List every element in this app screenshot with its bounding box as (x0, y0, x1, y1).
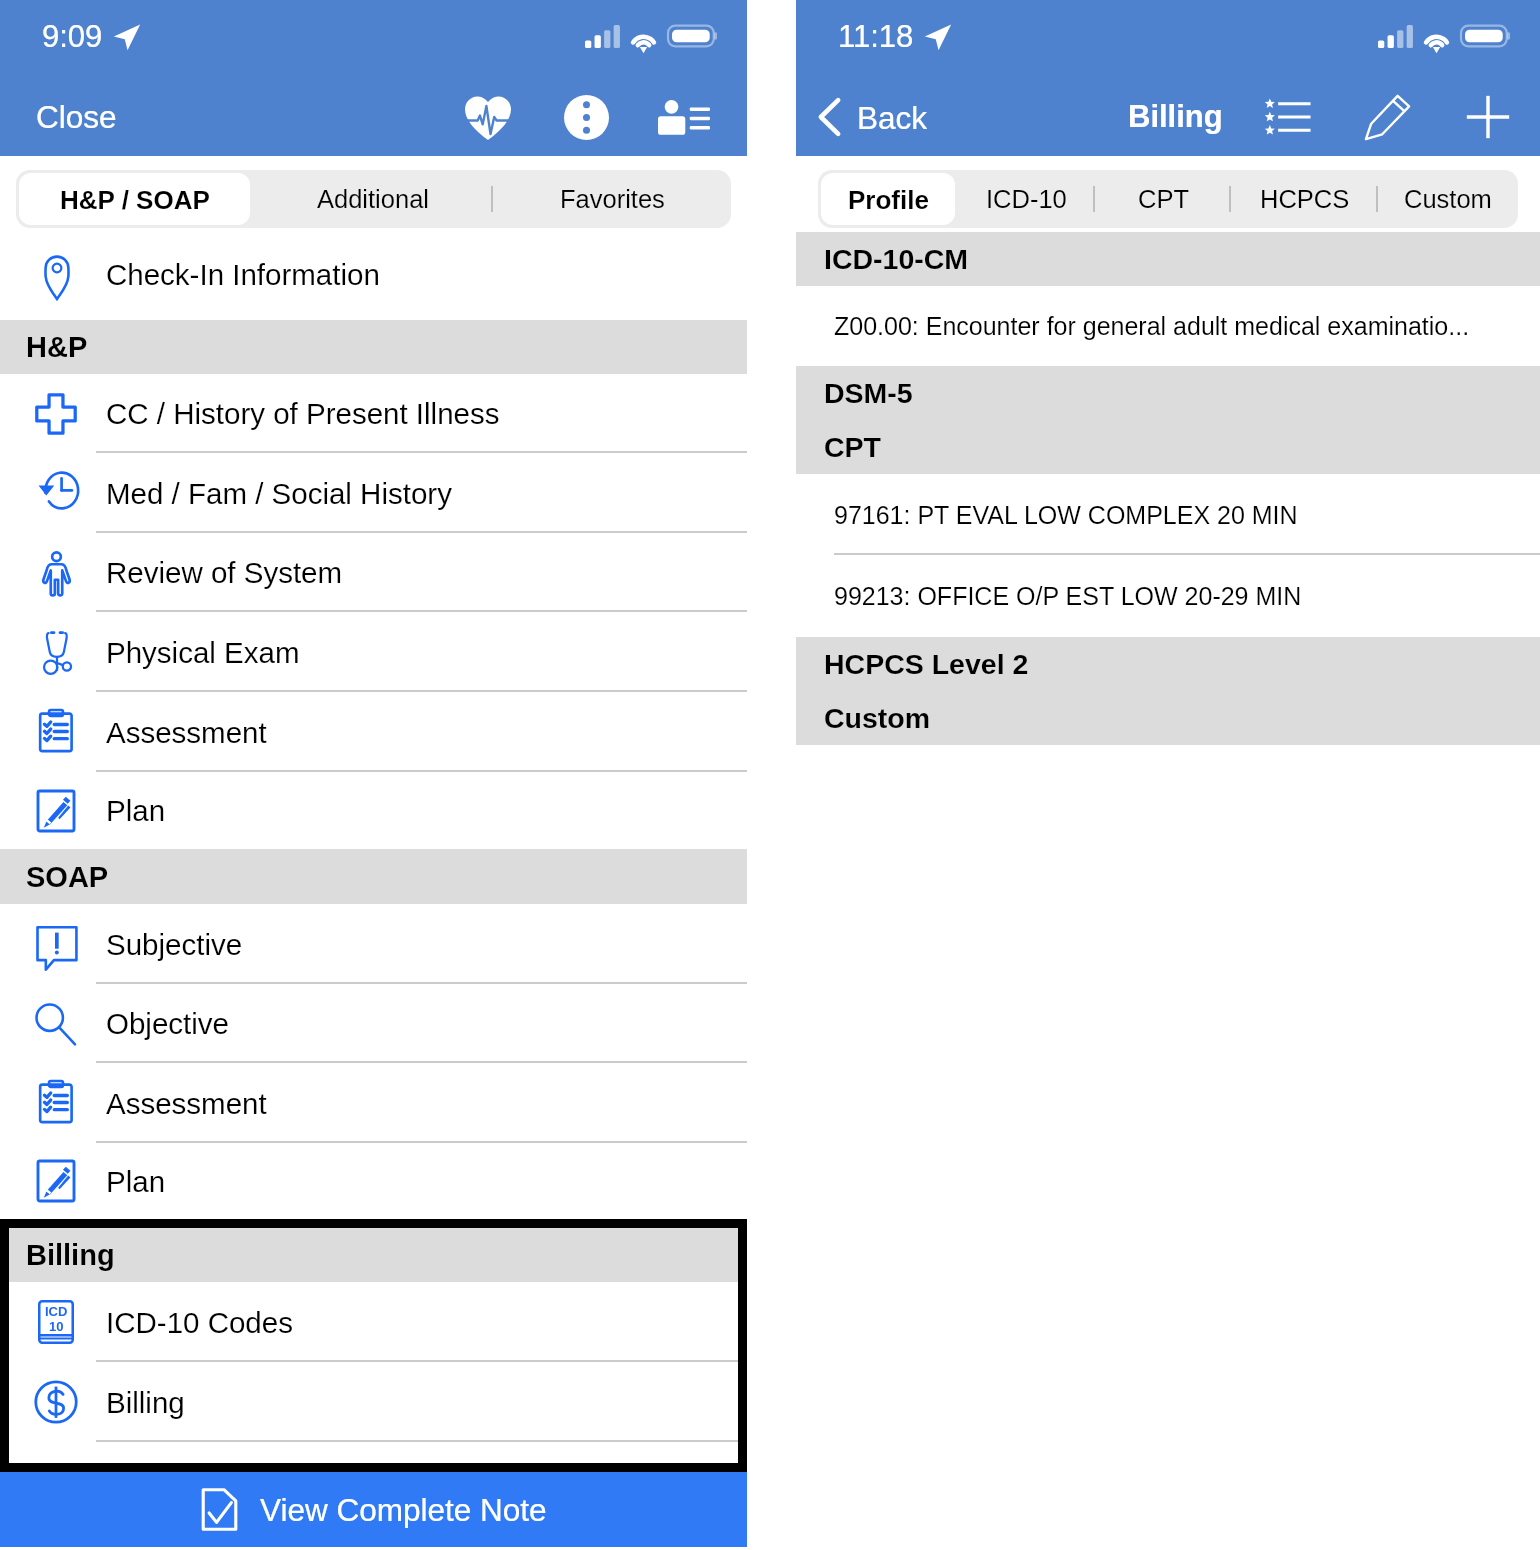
staticText: H&P (26, 331, 88, 363)
staticText: Plan (106, 794, 166, 827)
staticText: Close (36, 99, 117, 134)
staticText: Custom (824, 702, 931, 734)
staticText: CC / History of Present Illness (106, 397, 500, 430)
button[interactable]: H&P / SOAP (19, 173, 250, 225)
button[interactable]: Objective (0, 984, 747, 1063)
staticText: Physical Exam (106, 636, 300, 669)
button[interactable]: Add (1449, 78, 1527, 156)
button[interactable]: CPT (1098, 173, 1228, 225)
button[interactable]: Profile (821, 173, 955, 225)
staticText: Plan (106, 1165, 166, 1198)
button[interactable]: Edit (1349, 78, 1427, 156)
button[interactable]: Plan (0, 772, 747, 849)
staticText: Billing (106, 1386, 185, 1419)
staticText: ICD (45, 1304, 68, 1319)
staticText: HCPCS (1260, 185, 1350, 213)
staticText: Z00.00: Encounter for general adult medi… (834, 312, 1470, 340)
button[interactable]: Billing (0, 1362, 747, 1442)
staticText: Additional (317, 185, 429, 213)
staticText: Subjective (106, 928, 243, 961)
button[interactable]: More options (547, 78, 625, 156)
button[interactable]: Additional (256, 173, 490, 225)
staticText: ICD-10-CM (824, 243, 969, 275)
button[interactable]: Physical Exam (0, 612, 747, 692)
staticText: 11:18 (838, 19, 914, 54)
staticText: CPT (824, 431, 881, 463)
staticText: DSM-5 (824, 377, 913, 409)
button[interactable]: Check-In Information (0, 228, 747, 320)
staticText: Billing (1128, 99, 1223, 134)
staticText: Objective (106, 1007, 229, 1040)
staticText: HCPCS Level 2 (824, 648, 1029, 680)
staticText: Billing (26, 1239, 115, 1271)
button[interactable]: 99213: OFFICE O/P EST LOW 20-29 MIN (796, 555, 1540, 637)
button[interactable]: 97161: PT EVAL LOW COMPLEX 20 MIN (796, 474, 1540, 555)
button[interactable]: View Complete Note (0, 1472, 747, 1547)
staticText: Med / Fam / Social History (106, 477, 452, 510)
staticText: 10 (49, 1319, 64, 1334)
staticText: 99213: OFFICE O/P EST LOW 20-29 MIN (834, 582, 1302, 610)
staticText: 97161: PT EVAL LOW COMPLEX 20 MIN (834, 501, 1298, 529)
button[interactable]: Review of System (0, 533, 747, 612)
button[interactable]: Subjective (0, 904, 747, 984)
button[interactable]: Favorites (496, 173, 728, 225)
button[interactable]: Med / Fam / Social History (0, 453, 747, 533)
button[interactable]: HCPCS (1234, 173, 1375, 225)
staticText: Review of System (106, 556, 343, 589)
staticText: Custom (1404, 185, 1492, 213)
staticText: CPT (1138, 185, 1189, 213)
staticText: H&P / SOAP (60, 185, 210, 214)
button[interactable]: Patient list (645, 78, 723, 156)
staticText: Assessment (106, 716, 267, 749)
staticText: Favorites (560, 185, 665, 213)
button[interactable]: Custom (1381, 173, 1515, 225)
staticText: ICD-10 Codes (106, 1306, 293, 1339)
staticText: Assessment (106, 1087, 267, 1120)
button[interactable]: ICD-10 (961, 173, 1092, 225)
staticText: Back (857, 100, 928, 135)
button[interactable]: ICD (0, 1282, 747, 1362)
staticText: ICD-10 (986, 185, 1067, 213)
button[interactable]: Favorites list (1249, 78, 1327, 156)
button[interactable]: Plan (0, 1143, 747, 1219)
button[interactable]: Assessment (0, 692, 747, 772)
button[interactable]: CC / History of Present Illness (0, 374, 747, 453)
button[interactable]: Back (796, 87, 944, 147)
staticText: Check-In Information (106, 258, 380, 291)
button[interactable]: Z00.00: Encounter for general adult medi… (796, 286, 1540, 366)
staticText: View Complete Note (260, 1492, 547, 1527)
staticText: 9:09 (42, 19, 103, 54)
button[interactable]: Assessment (0, 1063, 747, 1143)
button[interactable]: Close (0, 85, 153, 148)
button[interactable]: Vitals (449, 78, 527, 156)
staticText: Profile (848, 185, 929, 214)
staticText: SOAP (26, 861, 109, 893)
